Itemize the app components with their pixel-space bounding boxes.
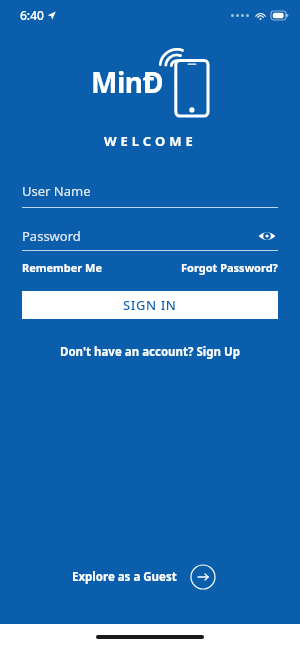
button[interactable]: User Name [22, 182, 278, 208]
staticText: Don't have an account? Sign Up [60, 344, 240, 360]
staticText: Explore as a Guest [72, 569, 177, 585]
staticText: Forgot Password? [181, 260, 278, 275]
staticText: SIGN IN [123, 296, 177, 314]
staticText: Remember Me [22, 260, 103, 275]
staticText: User Name [22, 182, 91, 200]
button[interactable]: Don't have an account? Sign Up [56, 340, 244, 364]
staticText: D [143, 63, 164, 101]
button[interactable]: SIGN IN [22, 291, 278, 319]
staticText: WELCOME [104, 132, 197, 150]
button[interactable]: Forgot Password? [181, 260, 278, 275]
staticText: 6:40 [20, 7, 44, 23]
button[interactable]: Password [22, 225, 278, 247]
staticText: Password [22, 227, 256, 245]
button[interactable]: Explore as a Guest [72, 563, 217, 591]
button[interactable]: Show password [256, 225, 278, 247]
staticText: Mint [91, 63, 155, 101]
button[interactable]: Remember Me [22, 260, 103, 275]
